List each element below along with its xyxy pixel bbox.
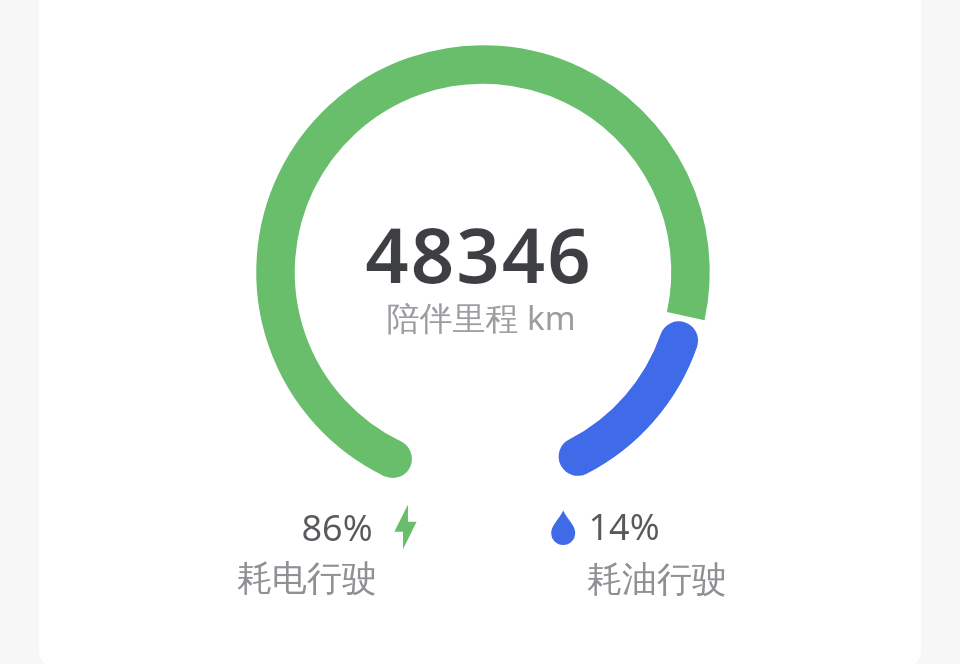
- staticText: 86%: [301, 503, 373, 552]
- staticText: 14%: [588, 502, 660, 551]
- staticText: 耗电行驶: [237, 556, 377, 600]
- staticText: 陪伴里程 km: [386, 295, 576, 340]
- staticText: 耗油行驶: [587, 557, 727, 601]
- staticText: 48346: [365, 202, 593, 306]
